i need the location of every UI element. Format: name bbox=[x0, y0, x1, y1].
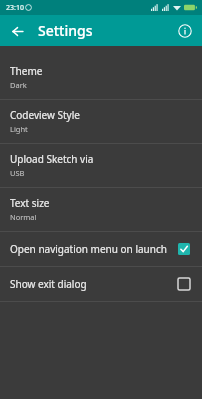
staticText: Normal bbox=[10, 212, 37, 222]
staticText: USB bbox=[10, 168, 25, 178]
staticText: Theme bbox=[10, 64, 43, 78]
button[interactable]: Text size bbox=[0, 188, 202, 231]
staticText: Codeview Style bbox=[10, 108, 80, 122]
staticText: Open navigation menu on launch bbox=[10, 242, 172, 256]
staticText: Light bbox=[10, 124, 28, 134]
button[interactable]: Show exit dialog bbox=[0, 267, 202, 301]
button[interactable]: Back bbox=[5, 19, 29, 43]
button[interactable]: Info bbox=[173, 19, 197, 43]
button[interactable]: Codeview Style bbox=[0, 100, 202, 143]
staticText: Text size bbox=[10, 196, 50, 210]
staticText: 23:10 bbox=[6, 3, 24, 13]
staticText: Upload Sketch via bbox=[10, 152, 94, 166]
button[interactable]: Upload Sketch via bbox=[0, 144, 202, 187]
staticText: Show exit dialog bbox=[10, 277, 172, 291]
staticText: Dark bbox=[10, 80, 27, 90]
staticText: Settings bbox=[38, 21, 93, 40]
button[interactable]: Open navigation menu on launch bbox=[0, 232, 202, 266]
button[interactable]: Theme bbox=[0, 56, 202, 99]
